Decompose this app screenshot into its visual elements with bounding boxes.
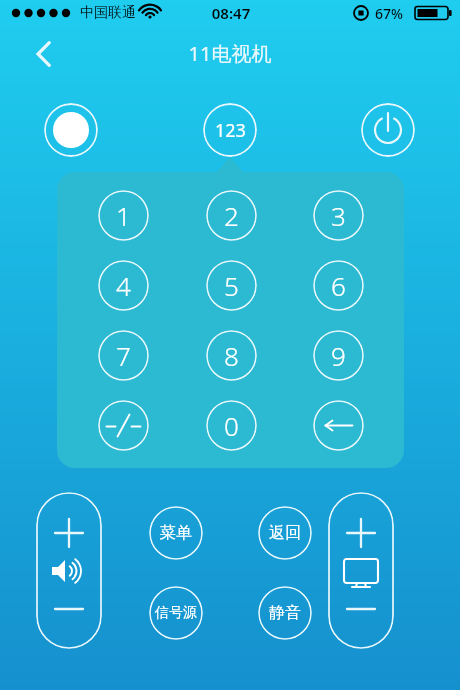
staticText: 中国联通 xyxy=(80,4,136,22)
button[interactable]: Source toggle xyxy=(44,103,98,157)
staticText: 5 xyxy=(224,268,239,303)
button[interactable]: Channel xyxy=(328,492,394,649)
button[interactable]: Volume xyxy=(36,492,102,649)
staticText: 123 xyxy=(215,118,246,143)
staticText: 静音 xyxy=(269,603,301,623)
button[interactable]: 3 xyxy=(313,190,364,241)
button[interactable]: 9 xyxy=(313,330,364,381)
staticText: 信号源 xyxy=(155,604,197,622)
button[interactable]: 1 xyxy=(98,190,149,241)
staticText: 08:47 xyxy=(203,3,259,23)
staticText: 1 xyxy=(116,198,131,233)
button[interactable]: Dash slash xyxy=(98,400,149,451)
button[interactable]: 0 xyxy=(206,400,257,451)
button[interactable]: 8 xyxy=(206,330,257,381)
button[interactable]: Back xyxy=(18,32,70,76)
staticText: 8 xyxy=(224,338,239,373)
button[interactable]: Power xyxy=(361,103,415,157)
staticText: 0 xyxy=(224,408,239,443)
button[interactable]: 7 xyxy=(98,330,149,381)
staticText: 11电视机 xyxy=(0,40,460,67)
button[interactable]: 菜单 xyxy=(149,506,203,560)
button[interactable]: 123 xyxy=(203,103,257,157)
button[interactable]: 4 xyxy=(98,260,149,311)
button[interactable]: Backspace xyxy=(313,400,364,451)
button[interactable]: 6 xyxy=(313,260,364,311)
staticText: 菜单 xyxy=(160,523,192,543)
button[interactable]: 2 xyxy=(206,190,257,241)
button[interactable]: 静音 xyxy=(258,586,312,640)
button[interactable]: 5 xyxy=(206,260,257,311)
staticText: 4 xyxy=(116,268,131,303)
staticText: 9 xyxy=(331,338,346,373)
staticText: 6 xyxy=(331,268,346,303)
staticText: 3 xyxy=(331,198,346,233)
staticText: 7 xyxy=(116,338,131,373)
staticText: 返回 xyxy=(269,523,301,543)
staticText: 2 xyxy=(224,198,239,233)
button[interactable]: 信号源 xyxy=(149,586,203,640)
staticText: 67% xyxy=(375,4,403,23)
button[interactable]: 返回 xyxy=(258,506,312,560)
